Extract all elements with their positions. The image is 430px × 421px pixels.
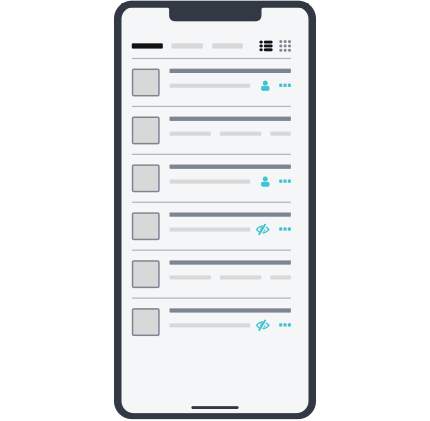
button[interactable]: List item 1 <box>132 58 291 106</box>
button[interactable]: Grid view <box>279 40 291 52</box>
button[interactable]: List view <box>259 40 273 52</box>
button[interactable]: List item 2 <box>132 106 291 154</box>
button[interactable]: List item 4 <box>132 202 291 250</box>
button[interactable]: List item 3 <box>132 154 291 202</box>
button[interactable]: List item 6 <box>132 297 291 345</box>
button[interactable]: List item 5 <box>132 250 291 297</box>
